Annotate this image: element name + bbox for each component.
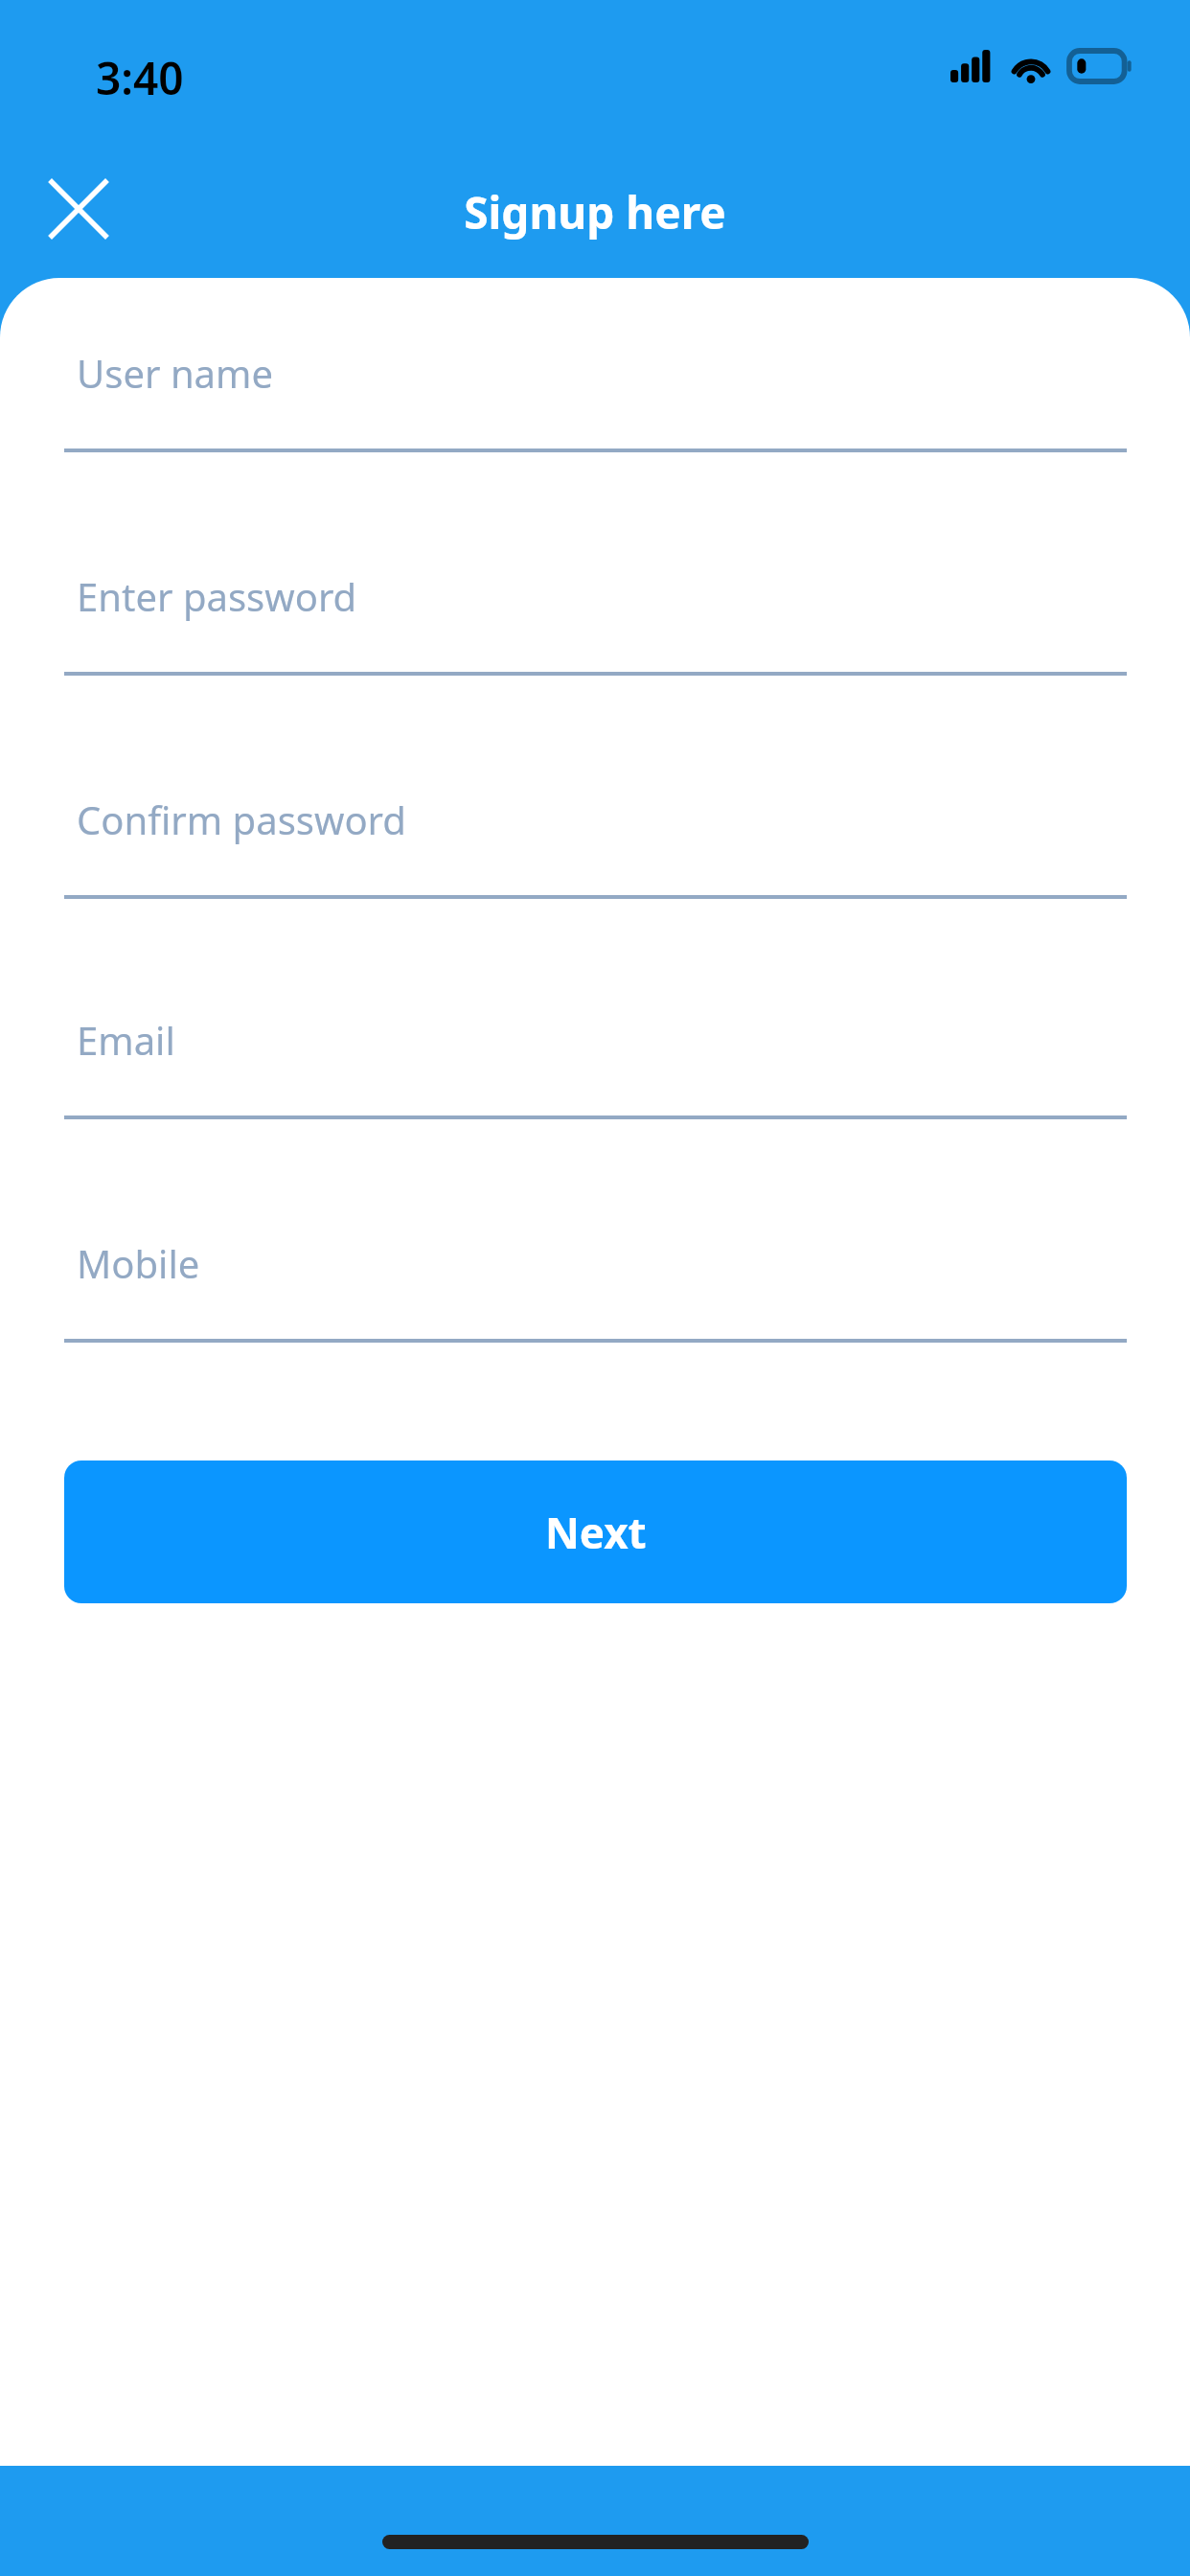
staticText: Signup here	[0, 182, 1190, 242]
staticText: Confirm password	[77, 793, 406, 845]
staticText: 3:40	[96, 48, 184, 108]
staticText: User name	[77, 347, 273, 399]
button[interactable]: Confirm password	[64, 793, 1127, 899]
staticText: Mobile	[77, 1237, 200, 1289]
button[interactable]: Next	[64, 1460, 1127, 1603]
button[interactable]: User name	[64, 347, 1127, 452]
staticText: Enter password	[77, 570, 357, 622]
staticText: Next	[545, 1504, 647, 1561]
button[interactable]: Mobile	[64, 1237, 1127, 1343]
staticText: Email	[77, 1014, 175, 1066]
button[interactable]: Enter password	[64, 570, 1127, 676]
button[interactable]: Email	[64, 1014, 1127, 1119]
button[interactable]: Close	[40, 171, 117, 247]
